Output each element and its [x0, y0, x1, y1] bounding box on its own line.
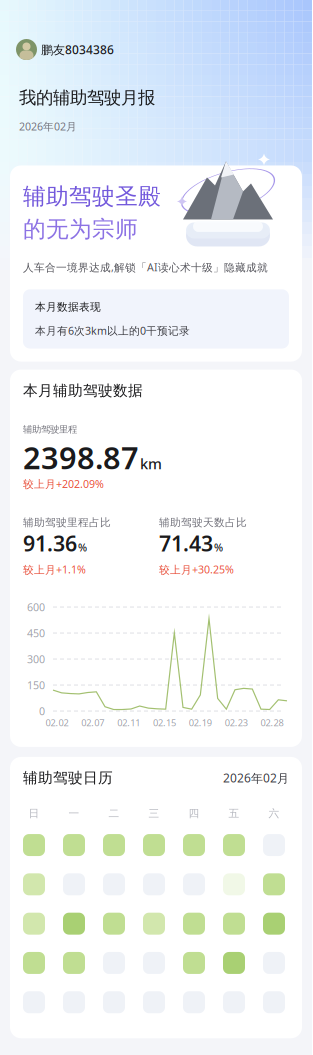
staticText: 02.02	[45, 716, 68, 729]
staticText: 91.36	[23, 529, 77, 557]
button[interactable]: Day 34	[223, 991, 245, 1013]
staticText: 辅助驾驶日历	[23, 769, 113, 787]
staticText: 五	[228, 807, 239, 820]
staticText: 较上月+30.25%	[159, 562, 234, 577]
staticText: 02.07	[81, 716, 104, 729]
button[interactable]: Day 19	[183, 913, 205, 935]
button[interactable]: Day 5	[183, 834, 205, 856]
staticText: 2026年02月	[19, 119, 77, 133]
staticText: 2026年02月	[223, 770, 289, 786]
button[interactable]: Day 31	[103, 991, 125, 1013]
staticText: 600	[27, 600, 45, 614]
button[interactable]: Day 21	[263, 913, 285, 935]
button[interactable]: Day 8	[23, 873, 45, 895]
staticText: 本月有6次3km以上的0干预记录	[35, 323, 190, 338]
staticText: 辅助驾驶里程	[23, 424, 77, 435]
button[interactable]: Day 15	[23, 913, 45, 935]
button[interactable]: Day 9	[63, 873, 85, 895]
staticText: 一	[68, 807, 79, 820]
staticText: km	[140, 454, 162, 473]
staticText: 辅助驾驶圣殿	[23, 182, 161, 210]
button[interactable]: Day 17	[103, 913, 125, 935]
button[interactable]: Day 30	[63, 991, 85, 1013]
button[interactable]: Day 22	[23, 952, 45, 974]
button[interactable]: Day 33	[183, 991, 205, 1013]
staticText: 辅助驾驶天数占比	[159, 516, 247, 529]
button[interactable]: Day 25	[143, 952, 165, 974]
button[interactable]: Day 23	[63, 952, 85, 974]
button[interactable]: Day 24	[103, 952, 125, 974]
staticText: 人车合一境界达成,解锁「AI读心术十级」隐藏成就	[23, 260, 268, 274]
staticText: 三	[148, 807, 159, 820]
button[interactable]: Day 27	[223, 952, 245, 974]
staticText: 本月数据表现	[35, 300, 101, 313]
button[interactable]: Day 28	[263, 952, 285, 974]
staticText: 2398.87	[23, 437, 139, 478]
button[interactable]: Day 35	[263, 991, 285, 1013]
button[interactable]: Day 32	[143, 991, 165, 1013]
staticText: 较上月+202.09%	[23, 477, 104, 491]
staticText: 较上月+1.1%	[23, 562, 86, 577]
button[interactable]: Day 29	[23, 991, 45, 1013]
staticText: 的无为宗师	[23, 215, 138, 243]
button[interactable]: Day 4	[143, 834, 165, 856]
staticText: 二	[108, 807, 119, 820]
button[interactable]: Day 11	[143, 873, 165, 895]
button[interactable]: Day 2	[63, 834, 85, 856]
button[interactable]: 鹏友8034386	[0, 35, 126, 64]
staticText: 本月辅助驾驶数据	[23, 382, 143, 400]
button[interactable]: Day 10	[103, 873, 125, 895]
staticText: 71.43	[159, 529, 213, 557]
button[interactable]: Day 6	[223, 834, 245, 856]
button[interactable]: Day 1	[23, 834, 45, 856]
staticText: 450	[27, 626, 45, 640]
button[interactable]: Day 12	[183, 873, 205, 895]
staticText: 日	[28, 807, 39, 820]
button[interactable]: Day 13	[223, 873, 245, 895]
staticText: 150	[27, 678, 45, 692]
staticText: 0	[39, 704, 45, 718]
staticText: 六	[268, 807, 279, 820]
staticText: 辅助驾驶里程占比	[23, 516, 111, 529]
staticText: 300	[27, 652, 45, 666]
staticText: 我的辅助驾驶月报	[19, 87, 155, 108]
button[interactable]: Day 14	[263, 873, 285, 895]
button[interactable]: Day 3	[103, 834, 125, 856]
button[interactable]: Day 26	[183, 952, 205, 974]
button[interactable]: Day 20	[223, 913, 245, 935]
button[interactable]: Day 7	[263, 834, 285, 856]
staticText: 02.11	[117, 716, 140, 729]
staticText: 02.15	[153, 716, 176, 729]
staticText: %	[214, 540, 223, 554]
button[interactable]: Day 16	[63, 913, 85, 935]
staticText: 四	[188, 807, 199, 820]
staticText: 02.19	[189, 716, 212, 729]
staticText: 鹏友8034386	[41, 41, 114, 57]
staticText: %	[78, 540, 87, 554]
staticText: 02.28	[260, 716, 283, 729]
button[interactable]: Day 18	[143, 913, 165, 935]
staticText: 02.23	[225, 716, 248, 729]
